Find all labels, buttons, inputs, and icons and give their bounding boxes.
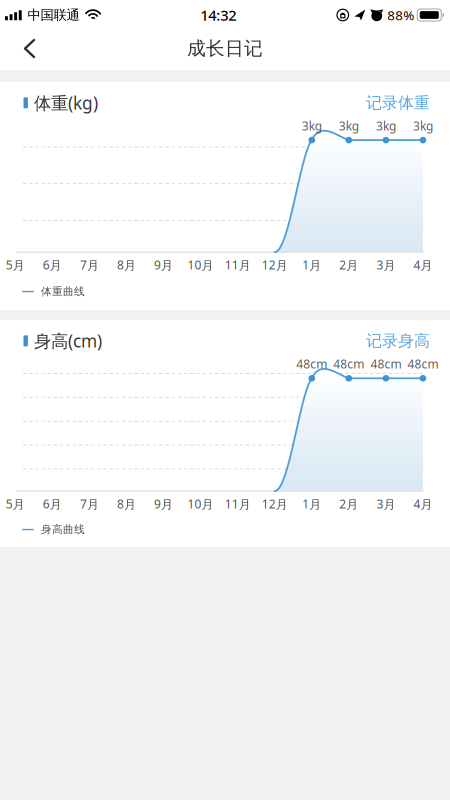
staticText: 成长日记	[187, 37, 263, 60]
staticText: 7月	[80, 496, 99, 512]
staticText: 中国联通	[27, 7, 79, 23]
staticText: 9月	[154, 496, 173, 512]
staticText: 10月	[188, 496, 214, 512]
staticText: 10月	[188, 257, 214, 273]
staticText: 12月	[262, 257, 288, 273]
staticText: 3月	[376, 257, 395, 273]
staticText: 9月	[154, 257, 173, 273]
staticText: 48cm	[407, 356, 438, 372]
staticText: 2月	[339, 257, 358, 273]
staticText: 48cm	[370, 356, 401, 372]
staticText: 5月	[6, 496, 25, 512]
staticText: 6月	[43, 257, 62, 273]
staticText: 体重(kg)	[34, 91, 98, 114]
staticText: 体重曲线	[41, 285, 85, 298]
staticText: 88%	[387, 6, 414, 24]
staticText: 3kg	[302, 118, 322, 134]
staticText: 3kg	[339, 118, 359, 134]
staticText: 4月	[413, 257, 432, 273]
staticText: 14:32	[200, 5, 236, 25]
staticText: 48cm	[296, 356, 327, 372]
staticText: 6月	[43, 496, 62, 512]
staticText: 11月	[225, 496, 251, 512]
staticText: 3月	[376, 496, 395, 512]
staticText: 48cm	[333, 356, 364, 372]
button[interactable]: Back	[0, 28, 50, 69]
staticText: 记录身高	[366, 331, 430, 351]
button[interactable]: 记录体重	[356, 89, 430, 117]
staticText: 8月	[117, 257, 136, 273]
button[interactable]: 记录身高	[356, 327, 430, 355]
staticText: 7月	[80, 257, 99, 273]
staticText: 4月	[413, 496, 432, 512]
staticText: 12月	[262, 496, 288, 512]
staticText: 记录体重	[366, 93, 430, 113]
staticText: 身高(cm)	[34, 329, 102, 352]
staticText: 1月	[302, 257, 321, 273]
staticText: 3kg	[376, 118, 396, 134]
staticText: 1月	[302, 496, 321, 512]
staticText: 11月	[225, 257, 251, 273]
staticText: 5月	[6, 257, 25, 273]
staticText: 2月	[339, 496, 358, 512]
staticText: 3kg	[413, 118, 433, 134]
staticText: 身高曲线	[41, 523, 85, 536]
staticText: 8月	[117, 496, 136, 512]
